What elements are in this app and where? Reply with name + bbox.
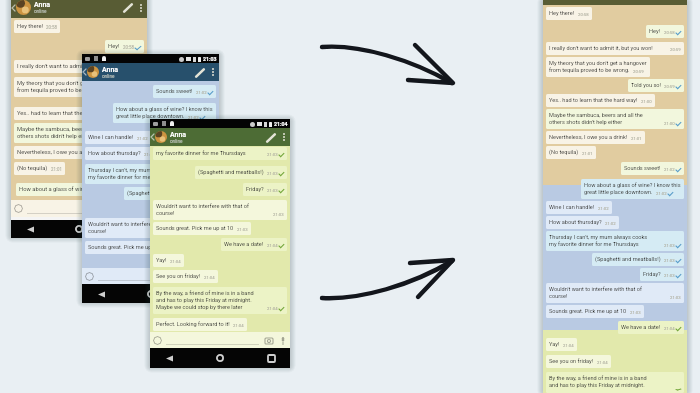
button[interactable]: Insert emoji <box>14 204 23 213</box>
button[interactable]: Record voice message <box>207 272 216 281</box>
button[interactable]: (No tequila) <box>14 162 65 175</box>
button[interactable]: Navigate up <box>150 128 155 146</box>
button[interactable]: By the way, a friend of mine is in a ban… <box>153 287 287 314</box>
button[interactable]: Perfect. Looking forward to it! <box>153 318 247 331</box>
button[interactable]: Maybe the sambuca, beers and all the <box>546 109 684 129</box>
staticText: great little place downtown. <box>116 113 185 120</box>
button[interactable]: Take photo <box>264 336 273 345</box>
button[interactable]: Wouldn't want to interfere with that of <box>85 218 216 238</box>
staticText: (Spaghetti and meatballs!) <box>198 169 264 176</box>
button[interactable]: Hey there! <box>14 20 60 33</box>
button[interactable]: Friday? <box>640 268 684 281</box>
staticText: 21:02 <box>598 206 609 211</box>
button[interactable]: Nevertheless, I owe you a drink! <box>546 131 645 144</box>
staticText: 21:00 <box>664 121 675 126</box>
button[interactable]: See you on friday! <box>546 355 611 368</box>
button[interactable]: How about thursday? <box>85 147 158 160</box>
button[interactable]: Home <box>213 351 227 365</box>
button[interactable]: Recent apps <box>121 222 135 236</box>
button[interactable]: I really don't want to admit it, but you… <box>546 42 684 55</box>
button[interactable]: We have a date! <box>221 238 287 251</box>
button[interactable]: By the way, a friend of mine is in a ban… <box>546 372 684 393</box>
staticText: 21:03 <box>664 243 675 248</box>
button[interactable]: Hey! <box>105 40 144 53</box>
button[interactable]: Insert emoji <box>85 272 94 281</box>
button[interactable]: Wine I can handle! <box>85 131 151 144</box>
button[interactable]: Home <box>72 222 86 236</box>
staticText: Sounds great. Pick me up at 10 <box>88 244 166 251</box>
button[interactable]: How about thursday? <box>546 216 619 229</box>
staticText: 21:04 <box>597 360 608 365</box>
staticText: from tequila proved to be wrong. <box>549 67 630 74</box>
staticText: Sounds sweet! <box>156 88 193 95</box>
button[interactable]: Insert emoji <box>153 336 162 345</box>
button[interactable]: Attach file <box>264 131 277 144</box>
staticText: Maybe the sambuca, beers and all the <box>17 126 115 133</box>
button[interactable]: My theory that you don't get a hangover <box>14 77 122 97</box>
button[interactable]: More options <box>279 131 289 143</box>
button[interactable]: Sounds great. Pick me up at 10 <box>85 241 183 254</box>
staticText: 20:58 <box>664 30 675 35</box>
button[interactable]: Back <box>162 351 176 365</box>
button[interactable]: More options <box>136 2 146 14</box>
button[interactable]: Attach file <box>121 1 134 14</box>
button[interactable]: Anna avatar <box>87 66 99 78</box>
staticText: 21:03 <box>664 258 675 263</box>
button[interactable]: Thursday I can't, my mum always cooks <box>85 164 216 184</box>
button[interactable]: Recent apps <box>193 287 207 301</box>
button[interactable]: Sounds great. Pick me up at 10 <box>153 222 251 235</box>
button[interactable]: Recent apps <box>264 351 278 365</box>
button[interactable]: Back <box>94 287 108 301</box>
button[interactable]: Told you so! <box>628 79 684 92</box>
button[interactable]: Yes.. had to learn that the hard way! <box>14 107 126 120</box>
button[interactable]: Take photo <box>193 272 202 281</box>
button[interactable]: (No tequila) <box>546 146 596 159</box>
staticText: 21:04 <box>204 275 215 280</box>
button[interactable]: Wouldn't want to interfere with that of <box>153 200 287 220</box>
button[interactable]: Sounds great. Pick me up at 10 <box>546 305 644 318</box>
staticText: 20:58 <box>123 45 134 50</box>
button[interactable]: Wine I can handle! <box>546 201 612 214</box>
button[interactable]: Maybe the sambuca, beers and all the <box>14 123 144 143</box>
button[interactable]: More options <box>208 66 218 78</box>
button[interactable]: Friday? <box>243 183 287 196</box>
staticText: I really don't want to admit it, but you… <box>549 45 653 52</box>
button[interactable]: Hey! <box>646 25 684 38</box>
button[interactable]: Hey there! <box>546 7 592 20</box>
button[interactable]: Nevertheless, I owe you a drink! <box>14 146 116 159</box>
button[interactable]: We have a date! <box>618 321 684 334</box>
staticText: and has to play this Friday at midnight. <box>156 297 252 304</box>
button[interactable]: Navigate up <box>82 63 87 81</box>
button[interactable]: Yay! <box>153 254 184 267</box>
button[interactable]: Sounds sweet! <box>621 162 684 175</box>
button[interactable]: Sounds sweet! <box>153 85 216 98</box>
button[interactable]: See you on friday! <box>153 270 218 283</box>
button[interactable]: (Spaghetti and meatballs!) <box>195 166 287 179</box>
button[interactable]: (Spaghetti and meatballs!) <box>124 187 216 200</box>
button[interactable]: Yay! <box>546 338 577 351</box>
button[interactable]: Wouldn't want to interfere with that of <box>546 283 684 303</box>
button[interactable]: How about a glass of wine? I know this <box>16 183 144 196</box>
button[interactable]: Navigate up <box>11 0 16 18</box>
button[interactable]: Anna avatar <box>155 131 167 143</box>
button[interactable]: Back <box>23 222 37 236</box>
button[interactable]: Record voice message <box>278 336 287 345</box>
button[interactable]: Attach file <box>193 66 206 79</box>
button[interactable]: How about a glass of wine? I know this <box>581 179 684 199</box>
button[interactable]: Thursday I can't, my mum always cooks <box>546 231 684 251</box>
button[interactable]: my favorite dinner for me Thursdays <box>153 147 287 160</box>
button[interactable]: My theory that you don't get a hangover <box>546 57 650 77</box>
button[interactable]: Home <box>144 287 158 301</box>
staticText: Told you so! <box>631 82 661 89</box>
button[interactable]: I really don't want to admit it, but you… <box>14 60 144 73</box>
staticText: Hey! <box>108 43 120 50</box>
button[interactable]: Anna avatar <box>16 0 31 15</box>
button[interactable]: How about a glass of wine? I know this <box>113 103 216 123</box>
staticText: 21:03 <box>273 212 284 217</box>
button[interactable]: (Spaghetti and meatballs!) <box>592 253 684 266</box>
button[interactable]: Yes.. had to learn that the hard way! <box>546 94 655 107</box>
